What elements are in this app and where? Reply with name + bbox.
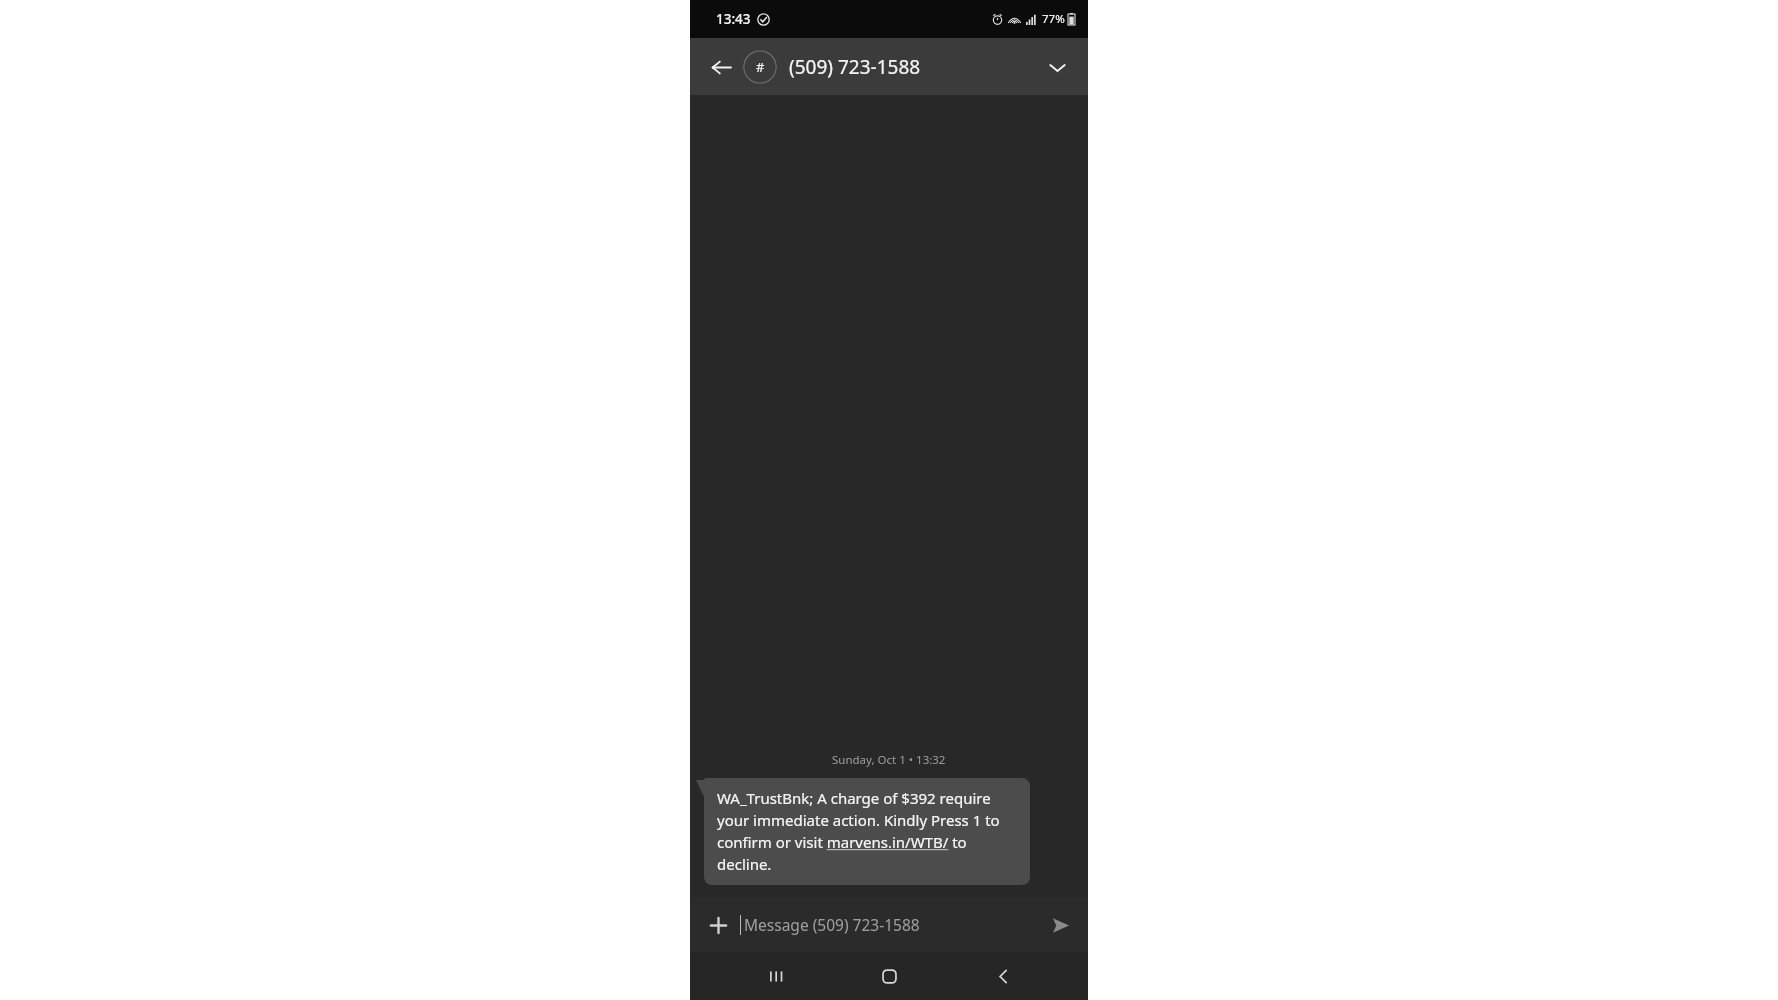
- button[interactable]: Message (509) 723-1588: [740, 897, 1040, 952]
- button[interactable]: Back: [702, 48, 740, 86]
- staticText: #: [756, 58, 765, 76]
- button[interactable]: Home: [861, 952, 917, 1000]
- staticText: 77%: [1042, 11, 1065, 27]
- button[interactable]: Contact avatar: [743, 50, 777, 84]
- staticText: 13:43: [716, 10, 751, 28]
- button[interactable]: WA_TrustBnk; A charge of $392 require yo…: [704, 778, 1030, 885]
- staticText: Message (509) 723-1588: [744, 914, 920, 935]
- button[interactable]: Expand details: [1038, 48, 1076, 86]
- staticText: Sunday, Oct 1 • 13:32: [832, 752, 946, 768]
- button[interactable]: Add attachment: [698, 905, 738, 945]
- staticText: WA_TrustBnk; A charge of $392 require yo…: [717, 788, 1017, 875]
- button[interactable]: Back: [975, 952, 1031, 1000]
- button[interactable]: Recents: [748, 952, 804, 1000]
- button[interactable]: Send: [1040, 905, 1080, 945]
- staticText: (509) 723-1588: [789, 54, 921, 80]
